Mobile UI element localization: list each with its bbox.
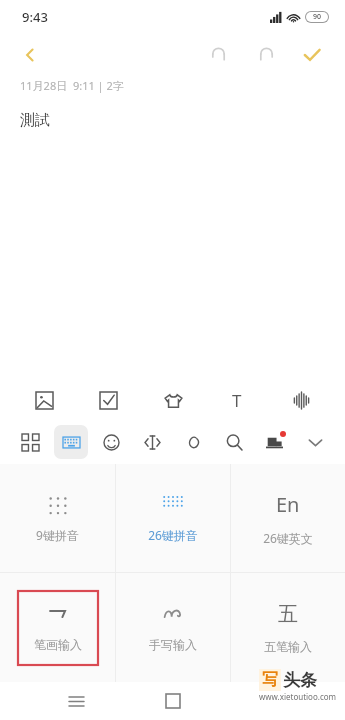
staticText: 測試: [20, 111, 50, 130]
button[interactable]: Voice input: [281, 380, 321, 420]
staticText: 9:43: [22, 8, 48, 26]
staticText: 26键英文: [263, 530, 313, 546]
staticText: 9键拼音: [36, 527, 79, 543]
staticText: 五: [278, 602, 298, 627]
staticText: 90: [313, 12, 322, 22]
staticText: www.xietoutioo.com: [259, 691, 337, 702]
button[interactable]: En: [231, 464, 345, 572]
button[interactable]: Cursor: [135, 425, 169, 459]
staticText: T: [232, 389, 242, 412]
button[interactable]: Emoji: [94, 425, 128, 459]
button[interactable]: Text format: [217, 380, 257, 420]
staticText: 手写输入: [149, 637, 197, 652]
button[interactable]: Clipboard: [176, 425, 210, 459]
staticText: 头条: [283, 670, 317, 691]
button[interactable]: 9键拼音: [0, 464, 115, 572]
button[interactable]: Back: [12, 37, 48, 73]
staticText: 笔画输入: [34, 637, 82, 652]
button[interactable]: Home: [153, 682, 193, 720]
button[interactable]: Style: [153, 380, 193, 420]
button[interactable]: Apps: [13, 425, 47, 459]
button[interactable]: More: [257, 425, 291, 459]
button[interactable]: 笔画输入: [0, 573, 115, 682]
staticText: 11月28日 9:11 | 2字: [20, 78, 124, 93]
button[interactable]: Keyboard: [54, 425, 88, 459]
button[interactable]: Collapse keyboard: [298, 425, 332, 459]
button[interactable]: Checklist: [88, 380, 128, 420]
staticText: 五笔输入: [264, 639, 312, 654]
button[interactable]: 手写输入: [116, 573, 230, 682]
staticText: 26键拼音: [148, 527, 198, 543]
button[interactable]: Recents: [56, 682, 96, 720]
staticText: En: [276, 491, 300, 518]
button[interactable]: Redo: [247, 36, 285, 74]
button[interactable]: Insert image: [24, 380, 64, 420]
button[interactable]: Search: [217, 425, 251, 459]
button[interactable]: 26键拼音: [116, 464, 230, 572]
button[interactable]: 五: [231, 573, 345, 682]
button[interactable]: Done: [293, 36, 331, 74]
button[interactable]: Undo: [199, 36, 237, 74]
staticText: 写: [262, 670, 278, 690]
